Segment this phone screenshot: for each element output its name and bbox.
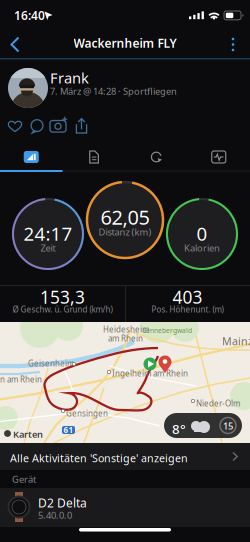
staticText: D2 Delta — [38, 495, 87, 511]
button[interactable]: Share — [71, 114, 93, 138]
staticText: Ingelheim am Rhein — [112, 368, 188, 379]
staticText: 24:17 — [23, 221, 72, 246]
staticText: 403 — [172, 285, 202, 308]
staticText: Zeit — [40, 242, 55, 254]
button[interactable]: Details — [62, 144, 125, 170]
staticText: Wackernheim FLY — [73, 35, 176, 51]
staticText: n am Rhein — [0, 374, 42, 385]
staticText: 15 — [223, 420, 233, 432]
staticText: Ø Geschw. ü. Grund (km/h) — [12, 304, 112, 315]
button[interactable]: More options — [218, 29, 248, 59]
staticText: Pos. Höhenunt. (m) — [151, 304, 223, 315]
staticText: Gerät — [12, 473, 36, 485]
staticText: Alle Aktivitäten 'Sonstige' anzeigen — [10, 451, 188, 465]
staticText: Mainz — [222, 334, 250, 348]
staticText: 0 — [196, 221, 207, 246]
staticText: Lennebergwald — [143, 326, 192, 335]
button[interactable]: Back — [2, 29, 32, 59]
staticText: 153,3 — [40, 285, 85, 308]
staticText: 61 — [63, 425, 73, 435]
staticText: Gensingen — [66, 408, 108, 419]
button[interactable]: Overview — [0, 144, 62, 170]
staticText: am Rhein — [108, 333, 143, 344]
button[interactable]: Like — [4, 114, 26, 138]
button[interactable]: Laps — [125, 144, 187, 170]
staticText: Karten — [13, 428, 43, 440]
staticText: Heidesheim — [103, 324, 149, 335]
staticText: Frank — [50, 68, 89, 87]
staticText: 8° — [172, 420, 186, 438]
staticText: 5.40.0.0 — [38, 509, 72, 521]
staticText: Distanz (km) — [98, 226, 151, 238]
staticText: Kalorien — [184, 242, 220, 254]
button[interactable]: Heart rate — [187, 144, 250, 170]
staticText: 62,05 — [100, 204, 149, 230]
button[interactable]: D2 Delta — [0, 488, 250, 527]
staticText: Nieder-Olm — [196, 398, 240, 409]
staticText: 16:40 — [14, 7, 45, 23]
button[interactable]: Comment — [26, 114, 48, 138]
staticText: Geisenheim — [28, 358, 74, 369]
button[interactable]: Add photo — [48, 114, 70, 138]
staticText: 7. März @ 14:28 · Sportfliegen — [50, 85, 177, 97]
button[interactable]: Alle Aktivitäten 'Sonstige' anzeigen — [0, 443, 250, 470]
